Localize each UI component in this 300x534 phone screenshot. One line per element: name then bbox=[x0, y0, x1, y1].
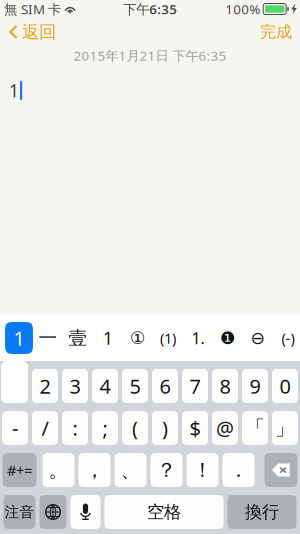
staticText: 壹 bbox=[68, 326, 87, 349]
button[interactable]: Next keyboard bbox=[39, 495, 66, 529]
button[interactable]: ) bbox=[152, 411, 178, 445]
staticText: 1 bbox=[9, 79, 19, 102]
button[interactable]: 」 bbox=[272, 411, 298, 445]
button[interactable]: ① bbox=[123, 318, 153, 358]
staticText: 完成 bbox=[260, 22, 292, 42]
staticText: - bbox=[12, 415, 18, 441]
button[interactable]: 4 bbox=[92, 369, 118, 403]
staticText: 」 bbox=[275, 416, 295, 440]
button[interactable]: ， bbox=[78, 453, 110, 487]
staticText: ; bbox=[102, 415, 107, 441]
button[interactable]: 8 bbox=[212, 369, 238, 403]
staticText: ) bbox=[162, 415, 168, 441]
button[interactable]: 注音 bbox=[3, 495, 35, 529]
button[interactable]: $ bbox=[182, 411, 208, 445]
staticText: 。 bbox=[48, 458, 68, 482]
button[interactable]: 2 bbox=[32, 369, 58, 403]
staticText: (-) bbox=[281, 328, 294, 348]
button[interactable]: @ bbox=[212, 411, 238, 445]
staticText: 返回 bbox=[22, 21, 56, 43]
button[interactable]: ？ bbox=[150, 453, 182, 487]
staticText: 2015年1月21日 下午6:35 bbox=[73, 47, 226, 64]
staticText: 4 bbox=[99, 373, 110, 399]
staticText: ❶ bbox=[220, 328, 236, 348]
staticText: 下午6:35 bbox=[123, 0, 177, 18]
button[interactable]: 1 bbox=[93, 318, 123, 358]
staticText: 9 bbox=[249, 373, 260, 399]
button[interactable]: 1 bbox=[5, 322, 33, 354]
button[interactable]: 6 bbox=[152, 369, 178, 403]
button[interactable]: 3 bbox=[62, 369, 88, 403]
button[interactable]: 1 bbox=[2, 369, 28, 403]
button[interactable]: 1. bbox=[183, 318, 213, 358]
staticText: 一 bbox=[38, 326, 57, 349]
button[interactable]: ❶ bbox=[213, 318, 243, 358]
button[interactable]: 9 bbox=[242, 369, 268, 403]
staticText: ！ bbox=[192, 458, 212, 482]
staticText: (1) bbox=[160, 328, 176, 348]
staticText: 0 bbox=[279, 373, 290, 399]
button[interactable]: 一 bbox=[33, 318, 63, 358]
staticText: 2 bbox=[39, 373, 50, 399]
staticText: 100% bbox=[225, 0, 260, 18]
staticText: ？ bbox=[156, 458, 176, 482]
button[interactable]: 換行 bbox=[227, 495, 296, 529]
staticText: 7 bbox=[189, 373, 200, 399]
button[interactable]: ⊖ bbox=[243, 318, 273, 358]
staticText: ． bbox=[228, 458, 248, 482]
button[interactable]: #+= bbox=[2, 453, 36, 487]
staticText: 5 bbox=[129, 373, 140, 399]
staticText: ⊖ bbox=[250, 328, 265, 348]
staticText: 1. bbox=[191, 327, 204, 349]
button[interactable]: (-) bbox=[273, 318, 300, 358]
button[interactable]: ！ bbox=[186, 453, 218, 487]
button[interactable]: 完成 bbox=[260, 18, 300, 46]
button[interactable]: Dictation bbox=[70, 495, 100, 529]
staticText: : bbox=[72, 415, 77, 441]
staticText: 3 bbox=[69, 373, 80, 399]
staticText: ( bbox=[132, 415, 138, 441]
button[interactable]: 7 bbox=[182, 369, 208, 403]
staticText: #+= bbox=[7, 460, 32, 480]
staticText: 空格 bbox=[147, 501, 181, 523]
button[interactable]: 1 bbox=[1, 361, 28, 403]
staticText: 、 bbox=[120, 458, 140, 482]
button[interactable]: 0 bbox=[272, 369, 298, 403]
staticText: / bbox=[41, 415, 48, 441]
button[interactable]: ; bbox=[92, 411, 118, 445]
button[interactable]: 5 bbox=[122, 369, 148, 403]
staticText: 注音 bbox=[4, 503, 34, 521]
button[interactable]: ( bbox=[122, 411, 148, 445]
staticText: 8 bbox=[219, 373, 230, 399]
staticText: 1 bbox=[103, 326, 113, 349]
button[interactable]: 「 bbox=[242, 411, 268, 445]
button[interactable]: - bbox=[2, 411, 28, 445]
staticText: ， bbox=[84, 458, 104, 482]
button[interactable]: : bbox=[62, 411, 88, 445]
button[interactable]: 。 bbox=[42, 453, 74, 487]
staticText: ① bbox=[130, 328, 146, 348]
staticText: 1 bbox=[13, 325, 24, 351]
button[interactable]: Delete bbox=[264, 453, 297, 487]
button[interactable]: 、 bbox=[114, 453, 146, 487]
button[interactable]: 返回 bbox=[0, 18, 62, 46]
button[interactable]: 壹 bbox=[63, 318, 93, 358]
button[interactable]: / bbox=[32, 411, 58, 445]
button[interactable]: (1) bbox=[153, 318, 183, 358]
button[interactable]: 空格 bbox=[104, 495, 223, 529]
staticText: 「 bbox=[245, 416, 265, 440]
staticText: 無 SIM 卡 bbox=[4, 0, 61, 18]
button[interactable]: ． bbox=[222, 453, 254, 487]
staticText: 6 bbox=[159, 373, 170, 399]
staticText: @ bbox=[216, 415, 234, 441]
staticText: 換行 bbox=[245, 501, 279, 523]
staticText: $ bbox=[189, 415, 200, 441]
